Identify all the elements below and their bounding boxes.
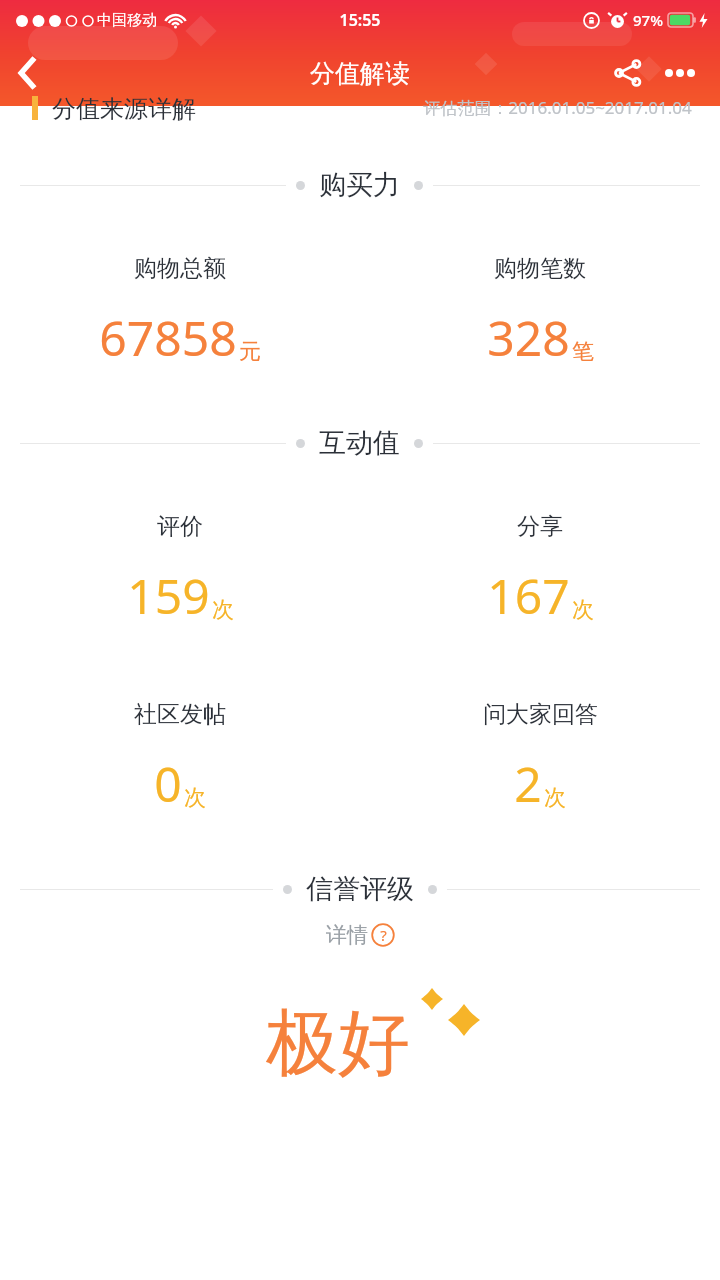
staticText: 分值来源详解	[52, 94, 196, 122]
staticText: 信誉评级	[306, 872, 414, 906]
staticText: 159	[127, 563, 210, 628]
staticText: 极好	[266, 998, 410, 1089]
staticText: 问大家回答	[483, 700, 598, 729]
button[interactable]: 分享	[360, 512, 720, 628]
button[interactable]: 评价	[0, 512, 360, 628]
staticText: 次	[544, 784, 566, 812]
staticText: 购买力	[319, 168, 400, 202]
staticText: 0	[154, 751, 182, 816]
staticText: 详情	[326, 922, 368, 948]
staticText: ?	[380, 925, 387, 945]
button[interactable]: Share	[602, 47, 654, 99]
button[interactable]: 社区发帖	[0, 700, 360, 816]
staticText: 分享	[517, 512, 563, 541]
button[interactable]: 问大家回答	[360, 700, 720, 816]
button[interactable]: 详情	[318, 918, 403, 952]
button[interactable]: 购物总额	[0, 254, 360, 370]
button[interactable]: More options	[654, 47, 706, 99]
staticText: 评价	[157, 512, 203, 541]
staticText: 次	[212, 596, 234, 624]
staticText: 97%	[633, 10, 663, 30]
staticText: 购物笔数	[494, 254, 586, 283]
button[interactable]: Back	[0, 45, 56, 101]
button[interactable]: 购物笔数	[360, 254, 720, 370]
staticText: 元	[239, 338, 261, 366]
staticText: 2	[514, 751, 542, 816]
staticText: 15:55	[339, 9, 381, 31]
staticText: 互动值	[319, 426, 400, 460]
staticText: 购物总额	[134, 254, 226, 283]
staticText: 次	[572, 596, 594, 624]
staticText: 次	[184, 784, 206, 812]
staticText: 分值解读	[310, 58, 410, 89]
staticText: 中国移动	[97, 11, 157, 30]
staticText: 评估范围：2016.01.05~2017.01.04	[423, 96, 692, 119]
staticText: 67858	[99, 305, 237, 370]
staticText: 328	[487, 305, 570, 370]
staticText: 笔	[572, 338, 594, 366]
staticText: 社区发帖	[134, 700, 226, 729]
staticText: 167	[487, 563, 570, 628]
